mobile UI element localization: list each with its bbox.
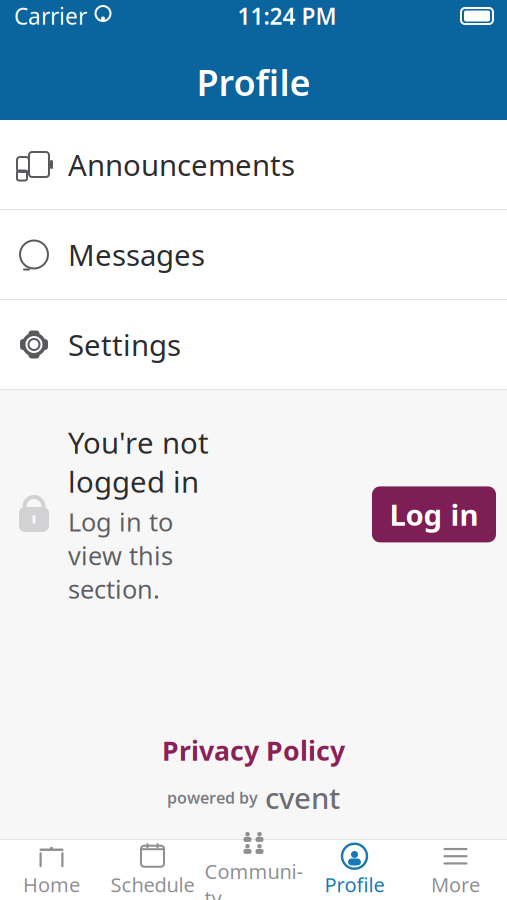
staticText: Home (23, 871, 80, 898)
button[interactable]: More (405, 839, 506, 900)
staticText: More (431, 871, 480, 898)
staticText: You're not logged in (68, 423, 209, 501)
button[interactable]: Messages (0, 210, 507, 299)
staticText: Announcements (68, 145, 295, 184)
staticText: powered by (167, 787, 258, 808)
button[interactable]: Community (203, 839, 304, 900)
staticText: Settings (68, 325, 181, 364)
staticText: cvent (265, 778, 340, 817)
button[interactable]: Announcements (0, 120, 507, 209)
staticText: Profile (324, 871, 384, 898)
staticText: 11:24 PM (237, 1, 336, 31)
staticText: Log in (389, 495, 478, 534)
staticText: Log in to view this section. (68, 505, 173, 606)
button[interactable]: Log in (372, 486, 496, 542)
button[interactable]: Profile (304, 839, 405, 900)
button[interactable]: Privacy Policy (162, 733, 345, 768)
button[interactable]: Settings (0, 300, 507, 389)
staticText: Community (204, 858, 302, 900)
staticText: Messages (68, 235, 205, 274)
staticText: Schedule (110, 871, 194, 898)
staticText: Carrier (14, 1, 87, 31)
staticText: Privacy Policy (162, 733, 345, 768)
button[interactable]: Home (1, 839, 102, 900)
button[interactable]: Schedule (102, 839, 203, 900)
staticText: Profile (196, 58, 310, 106)
